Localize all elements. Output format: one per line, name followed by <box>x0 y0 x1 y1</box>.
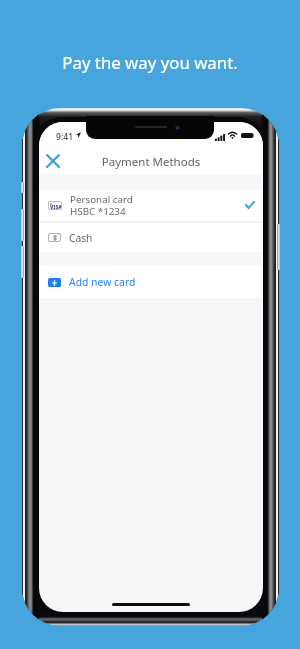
button[interactable]: Add new card <box>39 266 263 298</box>
staticText: Add new card <box>69 275 136 289</box>
staticText: Personal card HSBC *1234 <box>70 193 133 218</box>
button[interactable]: VISA <box>39 189 263 221</box>
staticText: 9:41 <box>56 131 74 143</box>
button[interactable]: Close <box>45 153 61 169</box>
staticText: Cash <box>69 231 93 245</box>
button[interactable]: Cash <box>39 223 263 252</box>
staticText: Pay the way you want. <box>0 51 300 74</box>
staticText: Payment Methods <box>39 154 263 170</box>
staticText: VISA <box>50 204 61 209</box>
